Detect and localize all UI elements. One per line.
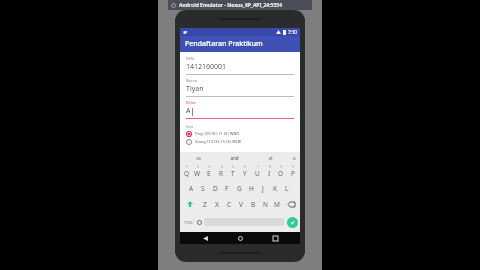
button[interactable]: Backspace xyxy=(283,196,299,212)
staticText: 5 xyxy=(232,165,234,169)
button[interactable]: Z xyxy=(198,196,211,212)
staticText: N xyxy=(263,200,268,209)
button[interactable]: Emoji xyxy=(195,213,204,231)
staticText: V xyxy=(239,200,243,209)
button[interactable]: X xyxy=(211,196,223,212)
button[interactable]: K xyxy=(269,180,281,196)
staticText: J xyxy=(262,184,264,193)
staticText: Pendaftaran Praktikum xyxy=(185,39,263,49)
button[interactable]: M xyxy=(271,196,283,212)
staticText: G xyxy=(237,184,242,193)
button[interactable]: 9 xyxy=(275,163,287,180)
button[interactable]: G xyxy=(233,180,245,196)
staticText: 2 xyxy=(197,165,199,169)
staticText: P xyxy=(291,169,295,178)
staticText: R xyxy=(219,169,224,178)
staticText: ?123 xyxy=(184,220,193,225)
staticText: K xyxy=(273,184,278,193)
staticText: Sesi xyxy=(186,124,194,129)
button[interactable]: F xyxy=(221,180,233,196)
button[interactable]: J xyxy=(257,180,269,196)
button[interactable]: 6 xyxy=(239,163,251,180)
button[interactable]: Home xyxy=(230,232,250,244)
staticText: D xyxy=(213,184,218,193)
staticText: Z xyxy=(203,200,207,209)
staticText: Tiyan xyxy=(186,84,204,94)
staticText: M xyxy=(274,200,280,209)
button[interactable]: Kelas xyxy=(186,100,294,119)
staticText: Pagi (09.00-11.00 WIB) xyxy=(195,131,240,137)
staticText: O xyxy=(278,169,284,178)
staticText: Nama xyxy=(186,78,198,83)
staticText: Q xyxy=(184,169,190,178)
button[interactable]: B xyxy=(247,196,259,212)
button[interactable]: L xyxy=(281,180,293,196)
staticText: X xyxy=(215,200,219,209)
staticText: 0 xyxy=(292,165,294,169)
staticText: C xyxy=(227,200,232,209)
staticText: and xyxy=(230,155,239,161)
button[interactable]: 4 xyxy=(215,163,227,180)
button[interactable]: Recent apps xyxy=(265,232,285,244)
button[interactable]: 0 xyxy=(287,163,299,180)
staticText: L xyxy=(285,184,289,193)
button[interactable]: Pagi (09.00-11.00 WIB) xyxy=(186,131,294,137)
staticText: E xyxy=(207,169,211,178)
staticText: 3 xyxy=(208,165,210,169)
button[interactable]: 1 xyxy=(181,163,192,180)
staticText: U xyxy=(255,169,260,178)
button[interactable]: and xyxy=(216,152,252,163)
staticText: as xyxy=(196,155,201,161)
staticText: A xyxy=(189,184,194,193)
button[interactable]: 2 xyxy=(192,163,203,180)
button[interactable]: D xyxy=(209,180,221,196)
button[interactable]: Siang (13.00-15.00 WIB) xyxy=(186,139,294,145)
staticText: F xyxy=(225,184,229,193)
staticText: Kelas xyxy=(186,100,196,105)
button[interactable]: 5 xyxy=(227,163,239,180)
button[interactable]: H xyxy=(245,180,257,196)
button[interactable]: Enter xyxy=(287,217,298,228)
button[interactable]: More suggestions xyxy=(288,152,300,163)
staticText: 1 xyxy=(186,165,188,169)
staticText: B xyxy=(251,200,256,209)
staticText: W xyxy=(194,169,201,178)
button[interactable]: NIM xyxy=(186,56,294,75)
button[interactable]: Shift xyxy=(181,196,198,212)
staticText: Siang (13.00-15.00 WIB) xyxy=(195,139,242,145)
staticText: NIM xyxy=(186,56,195,61)
button[interactable]: V xyxy=(235,196,247,212)
staticText: a xyxy=(293,155,296,161)
staticText: 4 xyxy=(221,165,223,169)
staticText: 1412160001 xyxy=(186,62,227,72)
staticText: 7:10 xyxy=(288,29,297,35)
button[interactable]: N xyxy=(259,196,271,212)
staticText: Y xyxy=(243,169,247,178)
staticText: H xyxy=(249,184,254,193)
button[interactable]: S xyxy=(197,180,209,196)
staticText: S xyxy=(201,184,205,193)
staticText: A xyxy=(186,106,191,116)
staticText: T xyxy=(231,169,235,178)
button[interactable]: 3 xyxy=(203,163,215,180)
button[interactable]: 8 xyxy=(263,163,275,180)
button[interactable]: 7 xyxy=(251,163,263,180)
button[interactable]: Back xyxy=(195,232,215,244)
staticText: 9 xyxy=(280,165,282,169)
staticText: Android Emulator - Nexus_6P_API_24:5554 xyxy=(179,2,283,9)
button[interactable]: C xyxy=(223,196,235,212)
button[interactable]: as xyxy=(180,152,216,163)
staticText: 6 xyxy=(244,165,246,169)
staticText: 8 xyxy=(269,165,271,169)
staticText: at xyxy=(268,155,273,161)
button[interactable]: A xyxy=(186,180,197,196)
button[interactable]: at xyxy=(252,152,288,163)
button[interactable]: Nama xyxy=(186,78,294,97)
staticText: I xyxy=(268,169,271,178)
button[interactable]: ?123 xyxy=(182,213,195,231)
staticText: 7 xyxy=(257,165,259,169)
